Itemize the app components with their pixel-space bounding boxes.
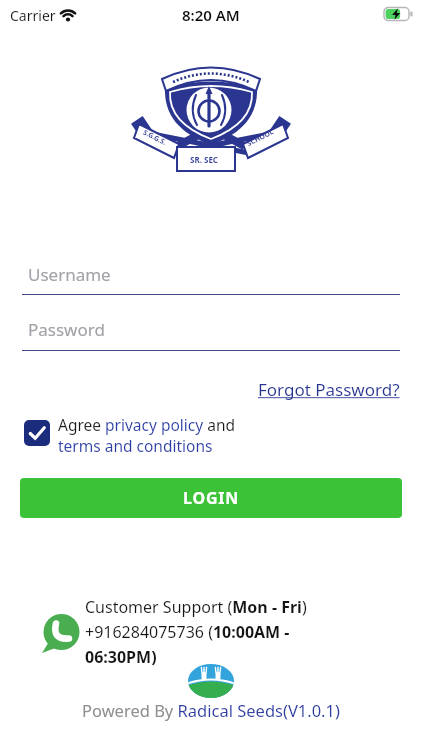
button[interactable]: Password: [22, 311, 400, 351]
staticText: 8:20 AM: [182, 5, 240, 25]
button[interactable]: Agree privacy policy and terms and condi…: [58, 414, 236, 456]
staticText: SR. SEC: [190, 154, 219, 165]
button[interactable]: Forgot Password?: [258, 378, 400, 401]
staticText: Carrier: [10, 6, 56, 25]
button[interactable]: Powered By Radical Seeds(V1.0.1): [82, 699, 340, 721]
button[interactable]: LOGIN: [20, 478, 402, 518]
staticText: SCHOOL: [245, 127, 276, 149]
button[interactable]: [41, 612, 81, 654]
staticText: Username: [28, 263, 111, 286]
button[interactable]: [24, 420, 50, 446]
button[interactable]: Customer Support (Mon - Fri) +9162840757…: [85, 596, 307, 667]
staticText: LOGIN: [183, 487, 240, 509]
button[interactable]: Username: [22, 255, 400, 295]
staticText: S.G.G.S.: [141, 128, 169, 148]
staticText: Password: [28, 318, 105, 341]
